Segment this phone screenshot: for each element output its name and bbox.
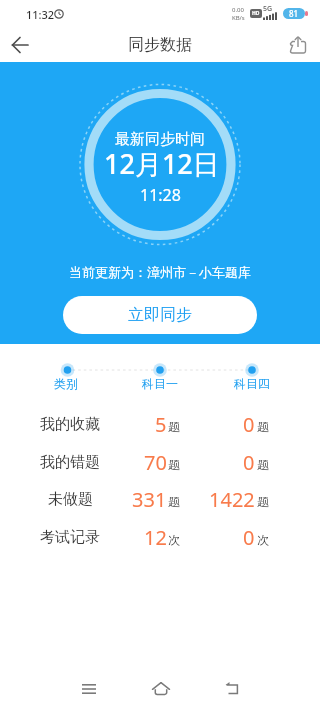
staticText: 0.00 [232,6,244,14]
button[interactable] [144,672,177,705]
button[interactable] [6,31,34,59]
button[interactable]: 考试记录 [0,522,320,552]
staticText: HD [252,10,260,17]
staticText: 次 [168,532,180,547]
staticText: 11:32 [26,7,55,22]
staticText: 当前更新为：漳州市－小车题库 [69,264,251,280]
staticText: 未做题 [48,490,93,509]
staticText: 最新同步时间 [115,130,205,149]
staticText: 0 [243,449,255,476]
staticText: 类别 [54,376,78,391]
staticText: 11:28 [140,184,181,206]
staticText: 科目四 [234,376,270,391]
staticText: 题 [168,419,180,434]
button[interactable]: 我的收藏 [0,409,320,439]
button[interactable]: 我的错题 [0,447,320,477]
staticText: 题 [168,457,180,472]
staticText: 331 [132,486,167,513]
staticText: 1422 [209,486,255,513]
staticText: 我的收藏 [40,415,100,434]
staticText: 12 [144,524,167,551]
staticText: 题 [257,419,269,434]
staticText: 我的错题 [40,453,100,472]
staticText: 81 [289,8,299,19]
staticText: 0 [243,411,255,438]
staticText: 题 [257,494,269,509]
staticText: 5 [155,411,167,438]
staticText: 70 [144,449,167,476]
staticText: 12月12日 [104,145,220,181]
staticText: 立即同步 [128,305,192,325]
button[interactable]: 未做题 [0,484,320,514]
staticText: 科目一 [142,376,178,391]
staticText: 次 [257,532,269,547]
staticText: KB/s [232,14,245,22]
button[interactable] [284,31,312,59]
staticText: 题 [168,494,180,509]
staticText: 5G [263,4,273,14]
staticText: 考试记录 [40,528,100,547]
button[interactable]: 立即同步 [63,296,257,334]
staticText: 同步数据 [128,35,192,55]
staticText: 0 [243,524,255,551]
staticText: 题 [257,457,269,472]
button[interactable] [72,672,105,705]
button[interactable] [216,672,249,705]
